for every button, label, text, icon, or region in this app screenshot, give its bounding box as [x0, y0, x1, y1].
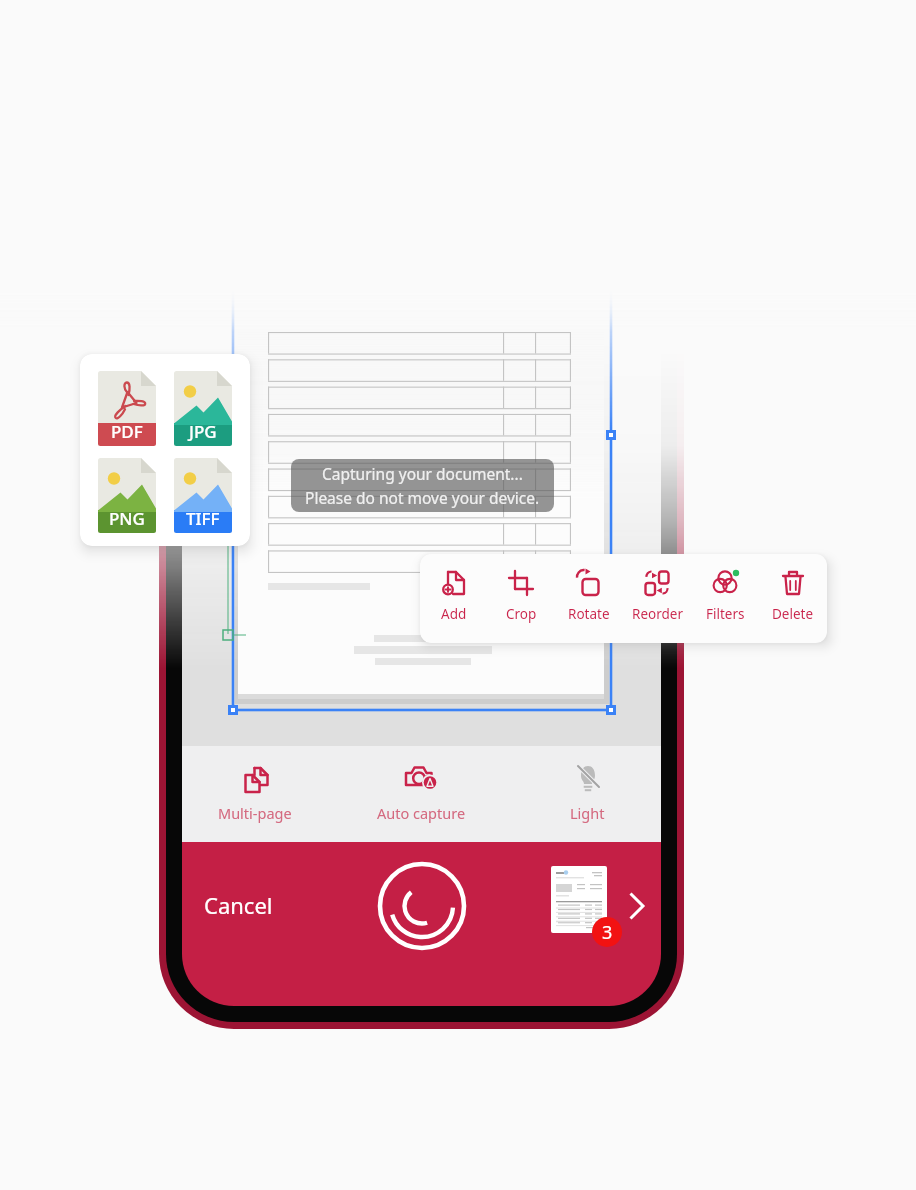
button[interactable]: TIFF: [174, 458, 232, 533]
staticText: Capturing your document...: [322, 463, 523, 484]
staticText: PNG: [109, 507, 145, 530]
button[interactable]: Multi-page: [182, 746, 328, 842]
button[interactable]: Capture: [376, 860, 468, 952]
staticText: PDF: [111, 420, 143, 443]
staticText: TIFF: [186, 507, 220, 530]
button[interactable]: Cancel: [192, 876, 284, 934]
button[interactable]: PDF: [98, 371, 156, 446]
button[interactable]: Delete: [759, 554, 827, 643]
button[interactable]: Captured pages: [549, 864, 609, 936]
button[interactable]: Reorder: [623, 554, 691, 643]
button[interactable]: Crop: [487, 554, 555, 643]
staticText: Light: [570, 803, 605, 823]
button[interactable]: Auto capture: [348, 746, 494, 842]
button[interactable]: Filters: [691, 554, 759, 643]
staticText: Delete: [772, 605, 814, 623]
staticText: Please do not move your device.: [305, 487, 540, 508]
button[interactable]: PNG: [98, 458, 156, 533]
staticText: Reorder: [632, 605, 683, 623]
staticText: Rotate: [568, 605, 610, 623]
staticText: Cancel: [204, 890, 273, 920]
button[interactable]: Rotate: [555, 554, 623, 643]
staticText: Multi-page: [218, 803, 292, 823]
staticText: Auto capture: [377, 803, 466, 823]
staticText: 3: [602, 920, 613, 945]
button[interactable]: Add: [420, 554, 487, 643]
button[interactable]: Light: [514, 746, 661, 842]
staticText: Filters: [706, 605, 745, 623]
button[interactable]: JPG: [174, 371, 232, 446]
button[interactable]: Next: [616, 880, 662, 932]
staticText: Add: [441, 605, 467, 623]
staticText: JPG: [189, 420, 217, 443]
staticText: Crop: [506, 605, 537, 623]
